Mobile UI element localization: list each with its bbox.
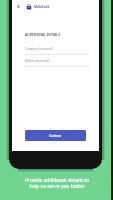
button[interactable]: Back xyxy=(15,0,99,13)
staticText: MobiLock xyxy=(34,5,50,9)
button[interactable]: Continue xyxy=(25,130,86,141)
staticText: Mobile (optional) xyxy=(25,59,49,63)
staticText: help us serve you better xyxy=(29,183,85,190)
staticText: ADDITIONAL DETAILS xyxy=(25,32,60,36)
staticText: Continue xyxy=(49,134,62,138)
staticText: Company (optional) xyxy=(25,47,53,51)
button[interactable]: Back xyxy=(15,3,22,10)
staticText: Provide additional details to xyxy=(25,177,89,184)
